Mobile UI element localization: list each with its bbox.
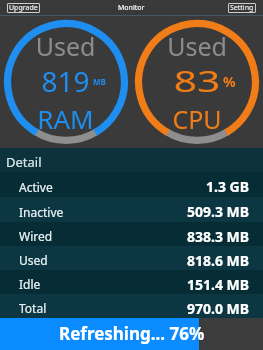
staticText: RAM <box>0 101 131 136</box>
button[interactable]: Total <box>0 294 263 318</box>
staticText: Inactive <box>19 204 64 220</box>
button[interactable]: Active <box>0 172 263 197</box>
button[interactable]: Setting <box>228 3 256 13</box>
staticText: Total <box>19 300 47 316</box>
staticText: Detail <box>6 153 42 171</box>
button[interactable]: Idle <box>0 270 263 294</box>
button[interactable]: RAM used 819 megabytes <box>0 16 131 148</box>
staticText: Setting <box>230 3 254 13</box>
staticText: Wired <box>19 228 53 244</box>
staticText: Used <box>131 29 263 63</box>
staticText: Used <box>0 29 131 63</box>
button[interactable]: Inactive <box>0 197 263 222</box>
staticText: MB <box>93 76 106 87</box>
staticText: CPU <box>131 102 263 136</box>
staticText: Used <box>19 252 48 268</box>
staticText: 970.0 MB <box>187 299 250 318</box>
staticText: 83 <box>105 61 263 100</box>
staticText: 1.3 GB <box>206 177 250 196</box>
button[interactable]: Refreshing... 76% <box>0 318 263 350</box>
button[interactable]: Used <box>0 246 263 270</box>
staticText: Idle <box>19 276 41 292</box>
button[interactable]: CPU used 83 percent <box>131 16 263 148</box>
staticText: 818.6 MB <box>187 251 250 270</box>
staticText: Refreshing... 76% <box>59 322 205 345</box>
button[interactable]: Upgrade <box>7 3 40 13</box>
staticText: Monitor <box>118 3 145 13</box>
staticText: Active <box>19 179 53 195</box>
staticText: 509.3 MB <box>187 202 250 221</box>
staticText: % <box>223 72 236 91</box>
staticText: Upgrade <box>9 3 38 13</box>
staticText: 819 <box>0 62 131 100</box>
staticText: 151.4 MB <box>187 275 250 294</box>
staticText: 838.3 MB <box>187 227 250 246</box>
button[interactable]: Wired <box>0 222 263 246</box>
